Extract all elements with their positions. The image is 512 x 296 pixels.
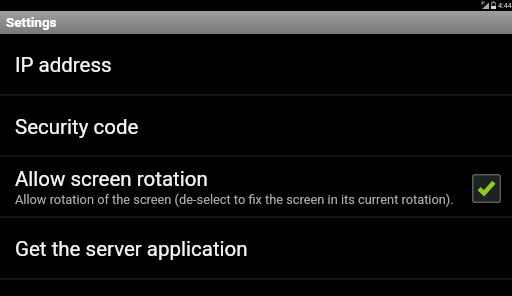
button[interactable]: IP address [0,34,512,94]
button[interactable]: Get the server application [0,218,512,278]
staticText: Security code [15,115,139,139]
button[interactable]: Security code [0,96,512,155]
staticText: IP address [15,53,112,77]
staticText: Allow screen rotation [15,167,208,191]
staticText: 4:44 [498,1,512,9]
staticText: Get the server application [15,237,248,261]
other: Allow screen rotation checkbox [472,174,501,203]
button[interactable]: Allow screen rotation [0,157,512,216]
staticText: Settings [6,14,57,30]
staticText: Allow rotation of the screen (de-select … [15,192,454,207]
